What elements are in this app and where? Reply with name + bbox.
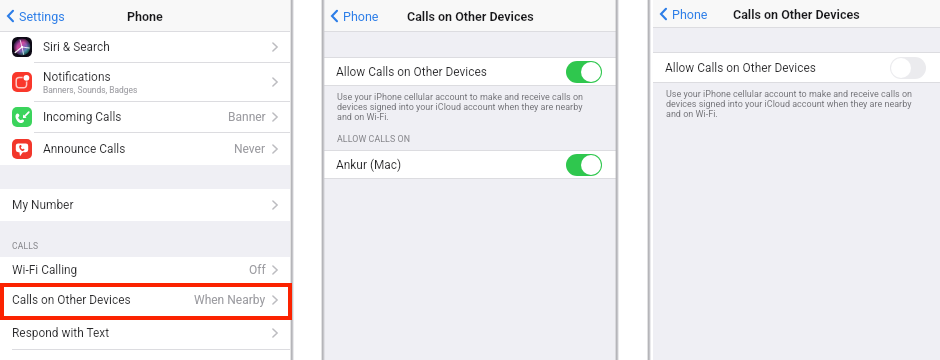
staticText: Respond with Text: [12, 326, 110, 340]
button[interactable]: Respond with Text: [0, 317, 290, 349]
staticText: Banner: [228, 110, 266, 124]
staticText: Ankur (Mac): [336, 158, 566, 172]
button[interactable]: My Number: [0, 189, 290, 221]
button[interactable]: Switch off: [890, 57, 926, 79]
staticText: Phone: [672, 7, 708, 22]
staticText: When Nearby: [194, 293, 266, 307]
staticText: Incoming Calls: [43, 110, 122, 124]
button[interactable]: Switch on: [566, 61, 602, 83]
staticText: Notifications: [43, 70, 111, 84]
staticText: ALLOW CALLS ON: [337, 134, 411, 144]
staticText: Phone: [343, 9, 379, 24]
button[interactable]: Notifications: [0, 63, 290, 101]
button[interactable]: Incoming Calls: [0, 102, 290, 132]
staticText: Use your iPhone cellular account to make…: [337, 92, 584, 122]
button[interactable]: Wi-Fi Calling: [0, 257, 290, 283]
staticText: Off: [249, 263, 266, 277]
staticText: Allow Calls on Other Devices: [336, 65, 566, 79]
staticText: Calls on Other Devices: [12, 293, 131, 307]
staticText: Siri & Search: [43, 40, 110, 54]
button[interactable]: Phone: [659, 0, 708, 28]
staticText: Phone: [127, 9, 163, 24]
staticText: Settings: [19, 9, 65, 24]
button[interactable]: Phone: [330, 0, 379, 32]
staticText: Banners, Sounds, Badges: [43, 85, 138, 95]
staticText: Calls on Other Devices: [407, 9, 534, 24]
button[interactable]: Calls on Other Devices: [0, 284, 290, 316]
staticText: Allow Calls on Other Devices: [665, 61, 890, 75]
button[interactable]: Allow Calls on Other Devices: [324, 58, 616, 85]
button[interactable]: Siri & Search: [0, 32, 290, 62]
staticText: Calls on Other Devices: [733, 7, 860, 22]
button[interactable]: Switch on: [566, 154, 602, 176]
button[interactable]: Settings: [6, 0, 65, 32]
button[interactable]: Announce Calls: [0, 133, 290, 165]
staticText: CALLS: [12, 241, 39, 251]
staticText: Wi-Fi Calling: [12, 263, 78, 277]
staticText: Use your iPhone cellular account to make…: [666, 89, 913, 119]
staticText: My Number: [12, 198, 74, 212]
button[interactable]: Ankur (Mac): [324, 151, 616, 178]
staticText: Announce Calls: [43, 142, 126, 156]
staticText: Never: [234, 142, 266, 156]
button[interactable]: Allow Calls on Other Devices: [653, 53, 940, 82]
